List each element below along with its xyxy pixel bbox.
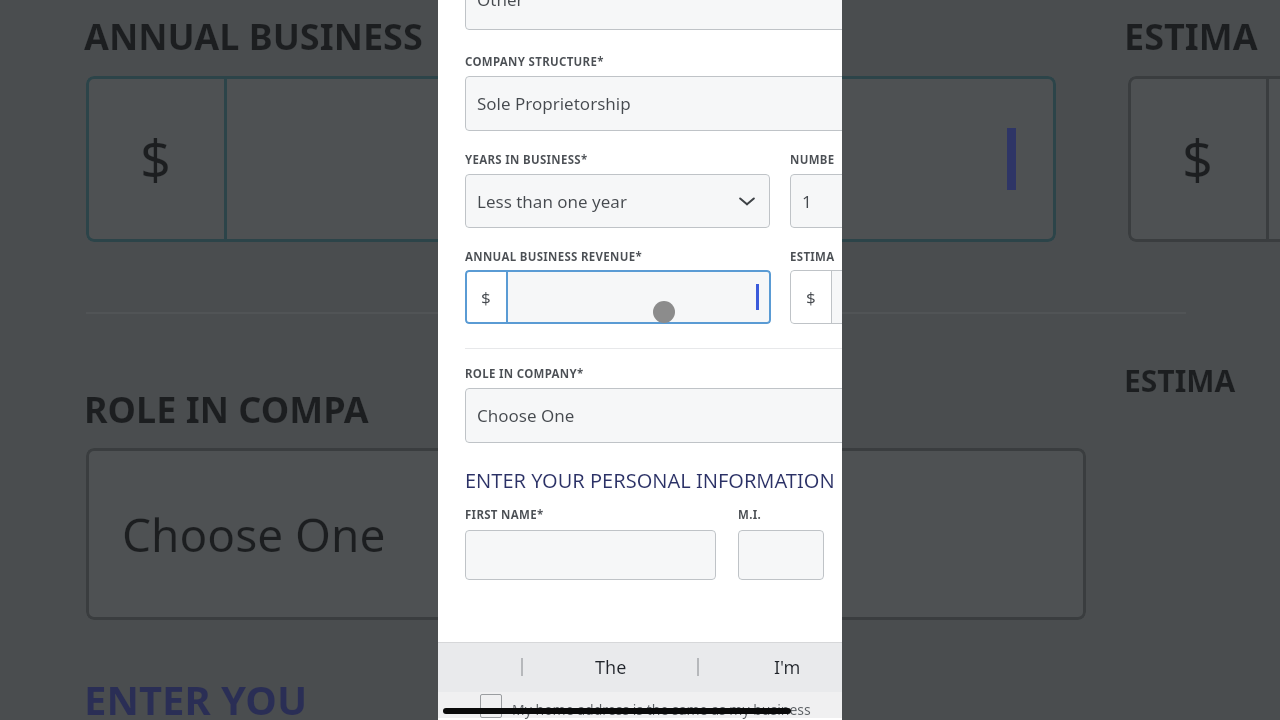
staticText: $ — [140, 122, 171, 196]
staticText: 1 — [802, 190, 812, 213]
staticText: ANNUAL BUSINESS REVENUE* — [465, 249, 643, 265]
button[interactable] — [465, 530, 716, 580]
staticText: Less than one year — [477, 190, 627, 213]
staticText: ANNUAL BUSINESS — [84, 12, 423, 61]
staticText: My home address is the same as my busine… — [512, 700, 811, 719]
button[interactable]: Other — [465, 0, 842, 30]
staticText: ESTIMA — [1124, 12, 1258, 61]
staticText: $ — [806, 286, 816, 309]
button[interactable]: $ — [465, 270, 771, 324]
staticText: YEARS IN BUSINESS* — [465, 152, 588, 168]
button[interactable]: Less than one year — [465, 174, 770, 228]
staticText: Sole Proprietorship — [477, 92, 631, 115]
staticText: M.I. — [738, 507, 761, 523]
button[interactable]: Choose One — [465, 388, 842, 443]
button[interactable]: I'm — [745, 642, 830, 692]
button[interactable] — [738, 530, 824, 580]
staticText: $ — [1182, 122, 1213, 196]
staticText: Choose One — [477, 404, 575, 427]
button[interactable]: Sole Proprietorship — [465, 76, 842, 131]
other: Home gesture bar — [443, 708, 791, 714]
staticText: ENTER YOU — [84, 672, 308, 720]
staticText: Other — [477, 0, 524, 11]
staticText: I'm — [774, 655, 801, 680]
staticText: ROLE IN COMPANY* — [465, 366, 584, 382]
staticText: ROLE IN COMPA — [84, 385, 369, 434]
button[interactable]: The — [568, 642, 653, 692]
staticText: FIRST NAME* — [465, 507, 544, 523]
staticText: ENTER YOUR PERSONAL INFORMATION — [465, 467, 835, 494]
staticText: $ — [481, 286, 491, 309]
staticText: ESTIMA — [1124, 360, 1236, 401]
staticText: COMPANY STRUCTURE* — [465, 54, 604, 70]
button[interactable]: 1 — [790, 174, 842, 228]
staticText: The — [595, 655, 627, 680]
staticText: ESTIMA — [790, 249, 835, 265]
staticText: Choose One — [122, 503, 386, 566]
staticText: NUMBE — [790, 152, 835, 168]
button[interactable]: $ — [790, 270, 842, 324]
